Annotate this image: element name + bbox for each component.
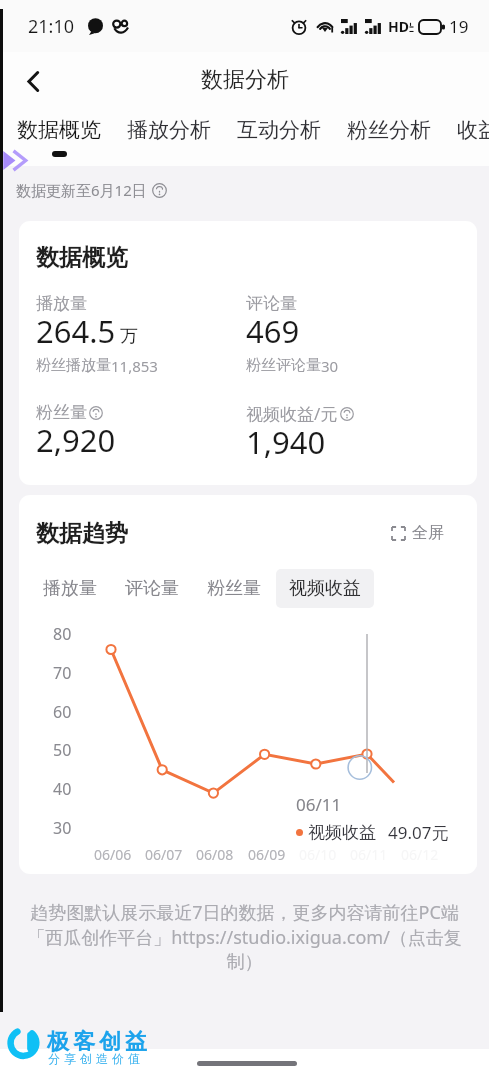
- staticText: 全屏: [412, 523, 444, 543]
- staticText: 粉丝量: [207, 577, 261, 600]
- button[interactable]: 播放量: [30, 569, 110, 608]
- staticText: 264.5: [36, 310, 116, 352]
- staticText: 1,940: [246, 421, 326, 463]
- staticText: 粉丝量: [36, 402, 87, 423]
- staticText: 评论量: [125, 577, 179, 600]
- staticText: 30: [321, 356, 339, 376]
- staticText: 播放分析: [127, 117, 211, 143]
- staticText: 收益: [457, 117, 489, 143]
- staticText: 互动分析: [237, 117, 321, 143]
- staticText: 视频收益: [289, 577, 361, 600]
- staticText: 数据更新至6月12日: [16, 180, 147, 200]
- staticText: 粉丝分析: [347, 117, 431, 143]
- staticText: 数据分析: [201, 66, 289, 94]
- staticText: 19: [449, 15, 469, 38]
- button[interactable]: 粉丝分析: [347, 117, 431, 151]
- button[interactable]: 粉丝量: [194, 569, 274, 608]
- button[interactable]: 全屏: [388, 520, 447, 546]
- staticText: 50: [53, 739, 72, 761]
- staticText: 06/11: [296, 793, 342, 816]
- staticText: 06/06: [94, 845, 132, 864]
- staticText: 视频收益: [308, 822, 376, 843]
- button[interactable]: 收益: [457, 117, 489, 151]
- staticText: 数据概览: [17, 117, 101, 143]
- staticText: 30: [53, 817, 72, 839]
- button[interactable]: 数据概览: [17, 117, 101, 157]
- staticText: 播放量: [43, 577, 97, 600]
- staticText: 40: [53, 778, 72, 800]
- button[interactable]: 视频收益: [276, 569, 374, 608]
- staticText: 2,920: [36, 419, 116, 461]
- staticText: 数据趋势: [36, 519, 128, 548]
- staticText: 06/07: [145, 845, 183, 864]
- staticText: 极客创益: [45, 1028, 149, 1056]
- staticText: 11,853: [111, 356, 158, 376]
- staticText: 数据概览: [36, 243, 128, 272]
- staticText: 播放量: [36, 293, 87, 314]
- staticText: 06/08: [196, 845, 234, 864]
- staticText: 评论量: [246, 293, 297, 314]
- staticText: 粉丝评论量: [246, 356, 321, 375]
- staticText: 60: [53, 701, 72, 723]
- staticText: 粉丝播放量: [36, 356, 111, 375]
- button[interactable]: 互动分析: [237, 117, 321, 151]
- button[interactable]: 评论量: [112, 569, 192, 608]
- staticText: 万: [120, 325, 138, 348]
- staticText: 21:10: [28, 14, 75, 39]
- button[interactable]: Back: [10, 58, 56, 104]
- staticText: 49.07元: [388, 821, 449, 844]
- staticText: 06/09: [248, 845, 286, 864]
- staticText: 80: [53, 623, 72, 645]
- staticText: HD: [388, 17, 409, 36]
- staticText: 趋势图默认展示最近7日的数据，更多内容请前往PC端「西瓜创作平台」https:/…: [23, 900, 466, 973]
- staticText: 469: [246, 310, 300, 352]
- button[interactable]: 播放分析: [127, 117, 211, 151]
- staticText: 分享创造价值: [46, 1051, 142, 1066]
- staticText: 视频收益/元: [246, 402, 338, 425]
- staticText: 70: [53, 662, 72, 684]
